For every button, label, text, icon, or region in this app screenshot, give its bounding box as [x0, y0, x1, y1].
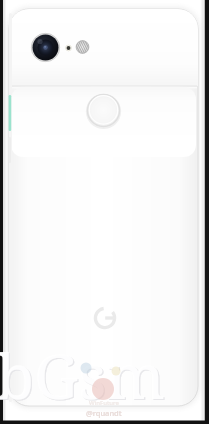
- button[interactable]: Google Pixel 3 white rear view: [0, 0, 209, 424]
